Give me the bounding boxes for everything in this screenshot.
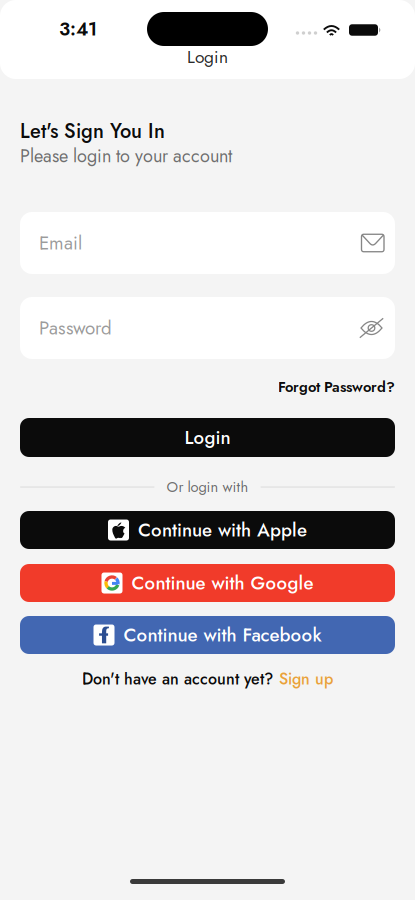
staticText: Login: [184, 424, 230, 451]
staticText: Or login with: [166, 476, 248, 498]
button[interactable]: Password: [20, 297, 395, 359]
staticText: Please login to your account: [20, 143, 232, 169]
button[interactable]: Continue with Facebook: [20, 616, 395, 654]
staticText: Continue with Facebook: [123, 621, 321, 648]
staticText: Don't have an account yet?: [82, 667, 273, 690]
button[interactable]: Forgot Password?: [20, 378, 395, 396]
button[interactable]: Email: [20, 212, 395, 274]
staticText: Password: [39, 314, 112, 341]
button[interactable]: Continue with Google: [20, 564, 395, 602]
staticText: Let's Sign You In: [20, 116, 165, 145]
button[interactable]: Sign up: [279, 667, 333, 690]
staticText: Email: [39, 229, 82, 256]
staticText: Login: [187, 44, 228, 69]
staticText: 3:41: [59, 15, 97, 42]
staticText: Continue with Apple: [138, 516, 307, 543]
button[interactable]: Continue with Apple: [20, 511, 395, 549]
staticText: Forgot Password?: [278, 376, 395, 398]
button[interactable]: Login: [20, 418, 395, 457]
staticText: Continue with Google: [131, 569, 313, 596]
staticText: Sign up: [279, 667, 333, 690]
